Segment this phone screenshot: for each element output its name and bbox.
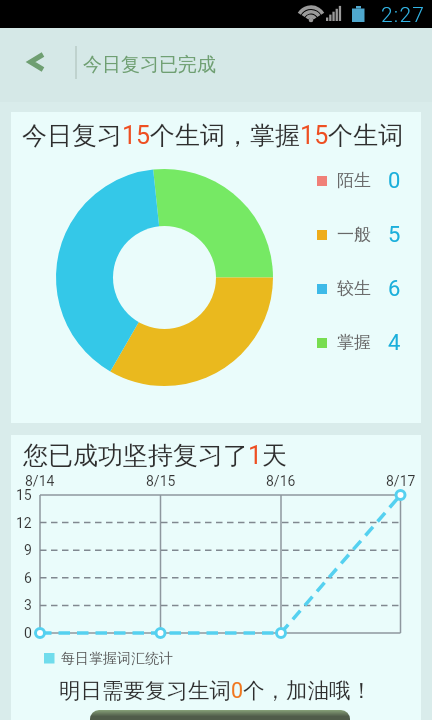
staticText: 今日复习15个生词，掌握15个生词 [22,120,404,151]
staticText: 8/14 [25,473,55,489]
staticText: 9 [24,542,32,558]
button[interactable] [90,710,350,720]
staticText: 一般 [337,224,371,245]
staticText: 8/17 [386,473,416,489]
staticText: 陌生 [337,170,371,191]
staticText: 8/16 [266,473,296,489]
staticText: 每日掌握词汇统计 [61,650,173,668]
staticText: 6 [388,276,401,302]
staticText: 2:27 [381,3,426,28]
staticText: 掌握 [337,332,371,353]
staticText: 12 [16,515,32,531]
staticText: 8/15 [146,473,176,489]
staticText: 0 [388,168,401,194]
staticText: 4 [388,330,401,356]
button[interactable]: 您已成功坚持复习了1天 [11,435,421,720]
staticText: 6 [24,570,32,586]
staticText: 5 [388,222,401,248]
staticText: 3 [24,597,32,613]
button[interactable] [0,28,72,102]
staticText: 明日需要复习生词0个，加油哦！ [59,677,373,704]
button[interactable]: 今日复习15个生词，掌握15个生词 [11,112,421,423]
staticText: 15 [16,487,32,503]
staticText: 0 [24,625,32,641]
staticText: 今日复习已完成 [83,53,216,77]
staticText: 您已成功坚持复习了1天 [23,440,288,471]
staticText: 较生 [337,278,371,299]
